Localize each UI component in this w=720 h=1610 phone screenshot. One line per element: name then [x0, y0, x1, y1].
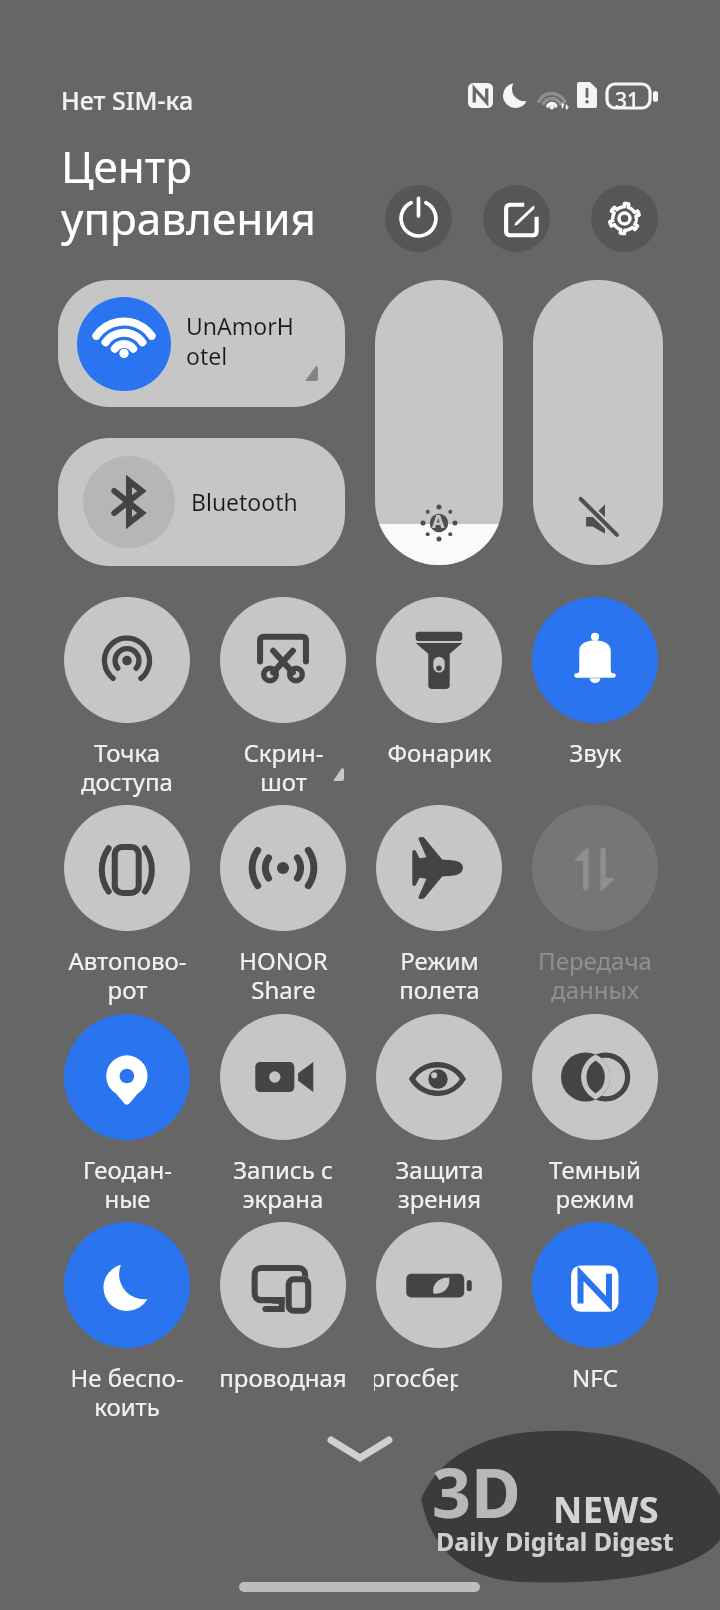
button[interactable]: Brightness	[375, 280, 503, 565]
staticText: Центр управления	[61, 136, 316, 248]
button[interactable]: Не беспо- коить	[49, 1222, 205, 1423]
staticText: Автопово- рот	[68, 944, 187, 1006]
button[interactable]: Power	[385, 185, 452, 252]
button[interactable]: Запись с экрана	[205, 1014, 361, 1215]
button[interactable]: Энергосбережение	[361, 1222, 517, 1391]
staticText: Скрин- шот	[243, 736, 324, 798]
staticText: Темный режим	[549, 1153, 641, 1215]
button[interactable]: UnAmorHotel	[58, 280, 345, 407]
button[interactable]: Volume	[533, 280, 663, 565]
staticText: Передача данных	[538, 944, 652, 1006]
button[interactable]: проводная	[205, 1222, 361, 1394]
button[interactable]: Автопово- рот	[49, 805, 205, 1006]
button[interactable]: Режим полета	[361, 805, 517, 1006]
button[interactable]: Settings	[591, 185, 658, 252]
button[interactable]: Edit	[483, 185, 550, 252]
staticText: NEWS	[553, 1485, 660, 1534]
staticText: Защита зрения	[395, 1153, 484, 1215]
staticText: Фонарик	[387, 736, 492, 769]
button[interactable]: Звук	[517, 597, 673, 769]
button[interactable]: Bluetooth	[58, 438, 345, 566]
staticText: проводная	[219, 1361, 347, 1394]
button[interactable]: Collapse	[320, 1415, 400, 1475]
staticText: 3D	[432, 1445, 521, 1538]
staticText: Геодан- ные	[83, 1153, 172, 1215]
staticText: Bluetooth	[191, 486, 298, 517]
button[interactable]: Точка доступа	[49, 597, 205, 798]
button[interactable]: NFC	[517, 1222, 673, 1394]
staticText: UnAmorHotel	[186, 310, 306, 372]
button[interactable]: Геодан- ные	[49, 1014, 205, 1215]
button[interactable]: Скрин- шот	[205, 597, 361, 798]
button[interactable]: Темный режим	[517, 1014, 673, 1215]
staticText: Не беспо- коить	[70, 1361, 184, 1423]
staticText: NFC	[572, 1361, 618, 1394]
staticText: Точка доступа	[81, 736, 173, 798]
staticText: Нет SIM-ка	[61, 83, 194, 117]
staticText: Daily Digital Digest	[436, 1524, 674, 1558]
staticText: 31	[615, 86, 640, 115]
staticText: Звук	[569, 736, 622, 769]
button[interactable]: Фонарик	[361, 597, 517, 769]
button[interactable]: HONOR Share	[205, 805, 361, 1006]
staticText: Запись с экрана	[233, 1153, 333, 1215]
button[interactable]: Передача данных	[517, 805, 673, 1006]
staticText: Энергосбережение	[374, 1361, 458, 1391]
staticText: HONOR Share	[239, 944, 328, 1006]
button[interactable]: Защита зрения	[361, 1014, 517, 1215]
staticText: Режим полета	[399, 944, 480, 1006]
staticText: A	[432, 509, 445, 534]
